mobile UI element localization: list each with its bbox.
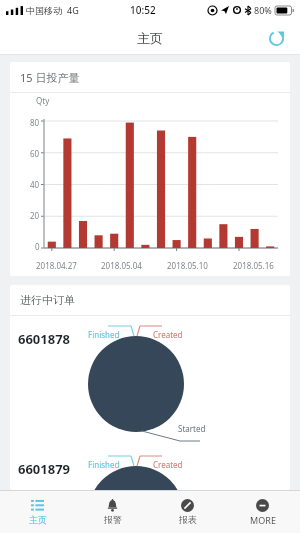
button[interactable]: 6601879 [10, 446, 290, 490]
button[interactable]: Refresh [262, 24, 290, 52]
staticText: 2018.04.27 [36, 260, 77, 271]
staticText: 报表 [179, 514, 197, 525]
button[interactable]: 6601878 [10, 316, 290, 446]
staticText: 80% [254, 4, 272, 16]
button[interactable]: 报表 [150, 491, 225, 533]
button[interactable]: MORE [225, 491, 300, 533]
staticText: 6601878 [18, 330, 71, 348]
staticText: MORE [250, 514, 276, 526]
staticText: 10:52 [130, 3, 156, 17]
staticText: 进行中订单 [20, 293, 75, 307]
staticText: 20 [30, 210, 40, 221]
staticText: 40 [30, 179, 40, 190]
staticText: Qty [36, 95, 50, 106]
staticText: 80 [30, 117, 40, 128]
button[interactable]: 报警 [75, 491, 150, 533]
staticText: 6601879 [18, 460, 71, 478]
staticText: 主页 [29, 514, 47, 525]
staticText: 15 日投产量 [20, 70, 80, 85]
staticText: Finished [88, 329, 120, 340]
staticText: 60 [30, 148, 40, 159]
staticText: Created [153, 329, 183, 340]
staticText: Finished [88, 459, 120, 470]
staticText: 2018.05.16 [233, 260, 274, 271]
staticText: 报警 [104, 514, 122, 525]
staticText: 中国移动 [26, 5, 62, 16]
staticText: 主页 [137, 30, 163, 46]
staticText: 2018.05.04 [101, 260, 142, 271]
staticText: Started [178, 423, 206, 434]
staticText: 2018.05.10 [167, 260, 208, 271]
button[interactable]: 主页 [0, 491, 75, 533]
staticText: Created [153, 459, 183, 470]
staticText: 0 [35, 241, 40, 252]
staticText: 4G [67, 4, 79, 16]
